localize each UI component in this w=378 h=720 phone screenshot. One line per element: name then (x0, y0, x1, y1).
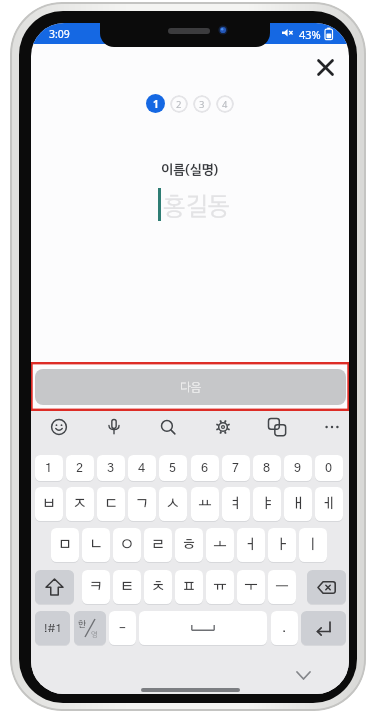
button[interactable]: 한 (74, 611, 106, 645)
button[interactable] (320, 415, 344, 439)
staticText: 0 (325, 462, 333, 475)
staticText: 3 (107, 462, 115, 475)
button[interactable]: 5 (159, 455, 187, 481)
staticText: 1 (45, 462, 53, 475)
button[interactable]: ㅎ (175, 528, 203, 562)
button[interactable]: ㅜ (237, 570, 265, 604)
staticText: ㅓ (244, 538, 258, 552)
button[interactable] (156, 415, 180, 439)
button[interactable] (265, 415, 289, 439)
staticText: 다음 (180, 378, 202, 396)
staticText: - (119, 622, 126, 634)
staticText: 3:09 (49, 27, 70, 41)
button[interactable]: ㅐ (284, 487, 312, 521)
staticText: ㄷ (104, 497, 118, 511)
button[interactable]: !#1 (35, 611, 70, 645)
button[interactable]: 3 (97, 455, 125, 481)
button[interactable]: 1 (35, 455, 63, 481)
button[interactable]: ㅛ (191, 487, 219, 521)
button[interactable]: 2 (66, 455, 94, 481)
staticText: ㅌ (120, 580, 134, 594)
button[interactable]: - (109, 611, 136, 645)
staticText: ㄱ (135, 497, 149, 511)
button[interactable]: ㅓ (237, 528, 265, 562)
button[interactable] (35, 570, 74, 604)
staticText: ㅁ (58, 538, 72, 552)
button[interactable]: ㅂ (35, 487, 63, 521)
staticText: 43% (299, 27, 321, 42)
button[interactable]: 6 (191, 455, 219, 481)
staticText: ㅑ (260, 497, 274, 511)
staticText: ㅂ (42, 497, 56, 511)
button[interactable]: ㄷ (97, 487, 125, 521)
staticText: ㅇ (120, 538, 134, 552)
button[interactable]: ㅇ (113, 528, 141, 562)
button[interactable]: 7 (222, 455, 250, 481)
staticText: ㄴ (89, 538, 103, 552)
staticText: ㅗ (213, 538, 227, 552)
staticText: 홍길동 (163, 187, 230, 225)
button[interactable]: ㄱ (128, 487, 156, 521)
button[interactable]: 다음 (35, 369, 346, 405)
staticText: !#1 (44, 623, 62, 634)
staticText: ㅠ (213, 580, 227, 594)
staticText: 4 (138, 462, 146, 475)
button[interactable] (47, 415, 71, 439)
button[interactable]: . (271, 611, 298, 645)
staticText: 9 (294, 462, 302, 475)
staticText: 한 (78, 617, 87, 631)
staticText: ㅣ (306, 538, 320, 552)
staticText: ㄹ (151, 538, 165, 552)
button[interactable]: ㄴ (82, 528, 110, 562)
button[interactable]: ㅁ (51, 528, 79, 562)
staticText: ㅕ (229, 497, 243, 511)
button[interactable]: 9 (284, 455, 312, 481)
button[interactable]: 0 (315, 455, 343, 481)
button[interactable]: ㅋ (82, 570, 110, 604)
button[interactable]: ㅔ (315, 487, 343, 521)
button[interactable]: ㄹ (144, 528, 172, 562)
staticText: 영 (91, 628, 99, 640)
button[interactable] (102, 415, 126, 439)
button[interactable] (301, 611, 346, 645)
button[interactable]: ㅏ (268, 528, 296, 562)
staticText: ㅎ (182, 538, 196, 552)
button[interactable]: ㅠ (206, 570, 234, 604)
staticText: ㅏ (275, 538, 289, 552)
button[interactable]: ㅣ (299, 528, 327, 562)
button[interactable]: 8 (253, 455, 281, 481)
button[interactable]: ㅅ (159, 487, 187, 521)
button[interactable]: ㅡ (268, 570, 296, 604)
button[interactable]: ㅊ (144, 570, 172, 604)
button[interactable] (307, 49, 343, 85)
button[interactable] (211, 415, 235, 439)
staticText: ㅅ (166, 497, 180, 511)
staticText: ㅐ (291, 497, 305, 511)
staticText: 5 (169, 462, 177, 475)
button[interactable] (139, 611, 267, 645)
button[interactable]: 4 (128, 455, 156, 481)
staticText: 6 (201, 462, 209, 475)
staticText: 2 (176, 98, 182, 111)
staticText: 1 (153, 97, 159, 111)
button[interactable]: ㅈ (66, 487, 94, 521)
button[interactable]: ㅕ (222, 487, 250, 521)
staticText: ㅔ (322, 497, 336, 511)
button[interactable]: ㅗ (206, 528, 234, 562)
staticText: ㅜ (244, 580, 258, 594)
staticText: ㅛ (198, 497, 212, 511)
staticText: ㅍ (182, 580, 196, 594)
staticText: . (282, 622, 287, 634)
staticText: ㅡ (275, 580, 289, 594)
staticText: 7 (232, 462, 240, 475)
staticText: 4 (222, 98, 228, 111)
staticText: ㅊ (151, 580, 165, 594)
staticText: ㅋ (89, 580, 103, 594)
staticText: 2 (76, 462, 84, 475)
button[interactable]: ㅍ (175, 570, 203, 604)
button[interactable] (289, 663, 317, 687)
button[interactable]: ㅌ (113, 570, 141, 604)
staticText: ㅈ (73, 497, 87, 511)
button[interactable]: ㅑ (253, 487, 281, 521)
button[interactable] (307, 570, 346, 604)
